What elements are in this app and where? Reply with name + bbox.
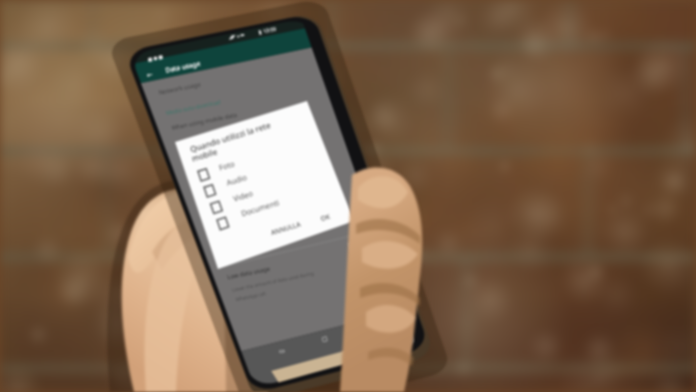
button[interactable] [0, 0, 696, 392]
